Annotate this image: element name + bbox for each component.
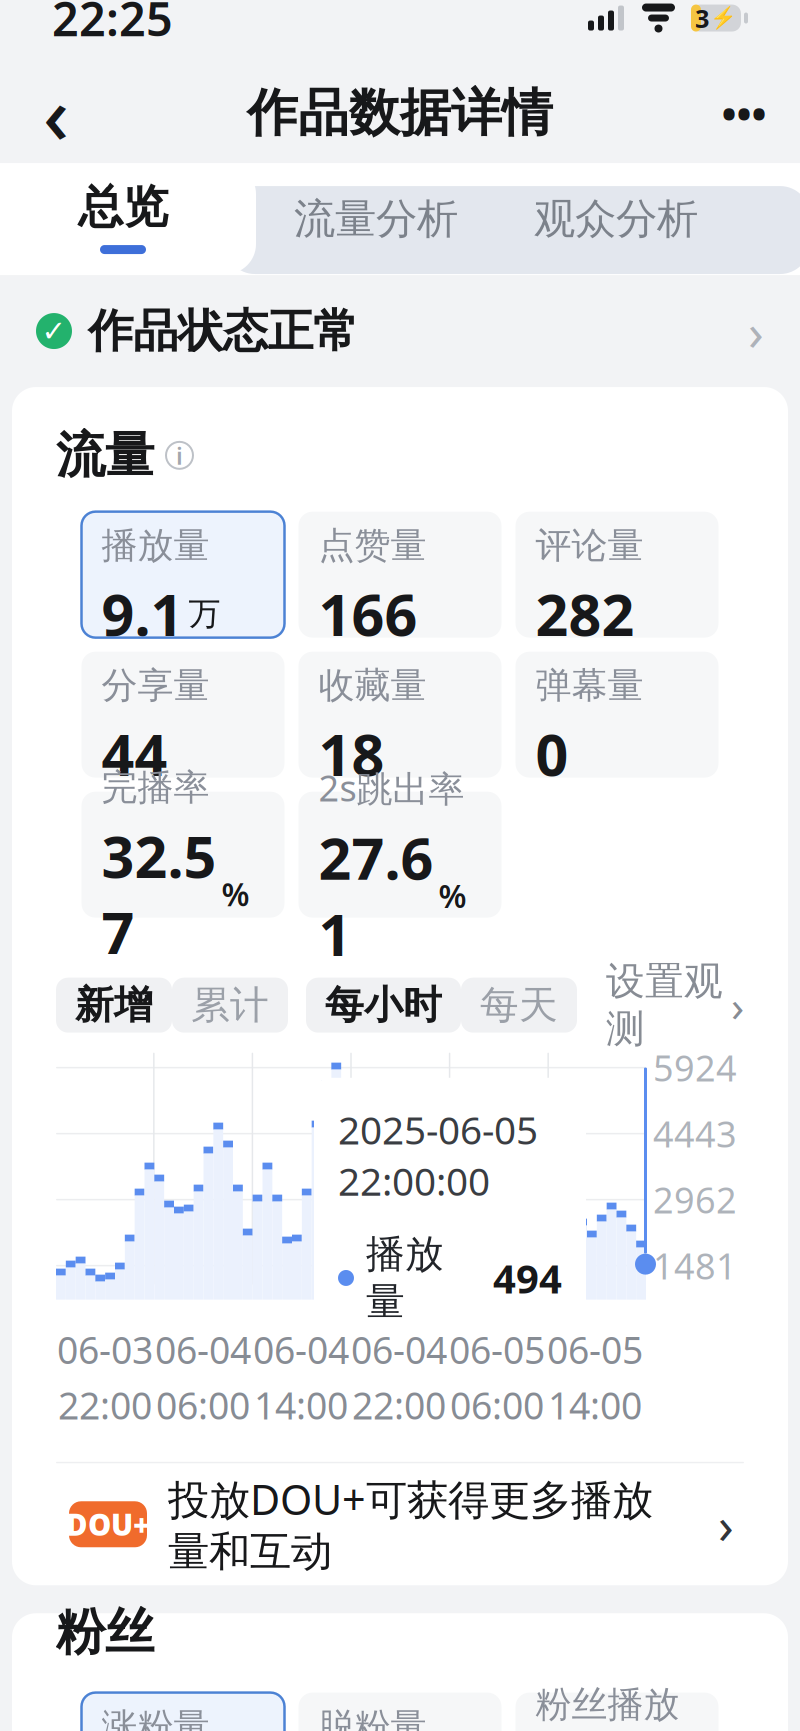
button[interactable]: 新增 xyxy=(56,978,172,1033)
button[interactable]: 弹幕量 xyxy=(515,652,718,778)
button[interactable]: 流量说明 xyxy=(166,439,193,471)
staticText: 流量 xyxy=(56,425,154,486)
button[interactable]: 脱粉量 xyxy=(298,1693,501,1731)
staticText: › xyxy=(718,1491,734,1558)
staticText: 22:25 xyxy=(52,0,173,49)
staticText: › xyxy=(731,977,744,1033)
button[interactable]: ✓ xyxy=(0,275,800,387)
staticText: 每天 xyxy=(480,981,558,1029)
staticText: 播放量 xyxy=(101,523,209,568)
staticText: 播放量 xyxy=(366,1230,444,1325)
staticText: 06-05 xyxy=(547,1325,643,1374)
staticText: 新增 xyxy=(75,981,153,1029)
staticText: 06:00 xyxy=(156,1380,250,1430)
button[interactable]: 播放量 xyxy=(81,512,284,638)
staticText: 完播率 xyxy=(101,765,209,810)
button[interactable]: 评论量 xyxy=(515,512,718,638)
button[interactable]: 点赞量 xyxy=(298,512,501,638)
button[interactable]: 每小时 xyxy=(306,978,461,1033)
staticText: 2962 xyxy=(653,1176,737,1223)
staticText: 作品数据详情 xyxy=(247,82,553,144)
staticText: 06-04 xyxy=(351,1325,447,1374)
staticText: 涨粉量 xyxy=(101,1704,209,1731)
staticText: 设置观测 xyxy=(606,958,723,1053)
staticText: 4443 xyxy=(653,1110,737,1157)
staticText: 44 xyxy=(101,716,167,792)
button[interactable]: 观众分析 xyxy=(496,164,736,274)
staticText: DOU+ xyxy=(66,1505,150,1544)
staticText: 06:00 xyxy=(450,1380,544,1430)
staticText: 18 xyxy=(318,716,384,792)
button[interactable]: 粉丝播放占比 xyxy=(515,1693,718,1731)
staticText: i xyxy=(176,439,183,471)
button[interactable]: DOU+ xyxy=(12,1463,788,1585)
button[interactable]: 涨粉量 xyxy=(81,1693,284,1731)
staticText: 分享量 xyxy=(101,663,209,708)
staticText: 06-04 xyxy=(253,1325,349,1374)
staticText: 投放DOU+可获得更多播放量和互动 xyxy=(168,1471,653,1577)
staticText: ••• xyxy=(721,86,766,140)
staticText: 粉丝播放占比 xyxy=(535,1682,679,1731)
staticText: 流量分析 xyxy=(294,194,458,244)
staticText: 总览 xyxy=(78,179,168,235)
staticText: 作品状态正常 xyxy=(88,303,358,359)
button[interactable]: 返回 xyxy=(16,73,96,153)
staticText: 22:00 xyxy=(58,1380,152,1430)
staticText: 收藏量 xyxy=(318,663,426,708)
button[interactable]: 分享量 xyxy=(81,652,284,778)
button[interactable]: 完播率 xyxy=(81,792,284,918)
staticText: % xyxy=(438,874,466,917)
staticText: 06-03 xyxy=(57,1325,153,1374)
staticText: 粉丝 xyxy=(56,1602,154,1663)
staticText: % xyxy=(221,872,249,915)
staticText: 494 xyxy=(493,1251,562,1304)
staticText: 评论量 xyxy=(535,523,643,568)
button[interactable]: 2s跳出率 xyxy=(298,792,501,918)
staticText: 06-04 xyxy=(155,1325,251,1374)
button[interactable]: 流量分析 xyxy=(256,164,496,274)
staticText: 弹幕量 xyxy=(535,663,643,708)
staticText: 5924 xyxy=(653,1044,737,1091)
staticText: 14:00 xyxy=(548,1380,642,1430)
staticText: 2025-06-05 22:00:00 xyxy=(338,1104,538,1206)
staticText: 32.57 xyxy=(101,818,216,970)
staticText: ⚡ xyxy=(710,6,737,30)
button[interactable]: 更多 xyxy=(704,73,784,153)
button[interactable]: 累计 xyxy=(172,978,288,1033)
staticText: 万 xyxy=(188,594,220,633)
staticText: ✓ xyxy=(41,314,66,348)
button[interactable]: 设置观测 xyxy=(606,958,744,1053)
staticText: 27.61 xyxy=(318,819,433,972)
staticText: 观众分析 xyxy=(534,194,698,244)
staticText: 282 xyxy=(535,576,634,652)
staticText: 3 xyxy=(695,1,709,35)
staticText: 2s跳出率 xyxy=(318,763,464,811)
staticText: 22:00 xyxy=(352,1380,446,1430)
staticText: 0 xyxy=(535,716,568,792)
staticText: 脱粉量 xyxy=(318,1704,426,1731)
staticText: 1481 xyxy=(653,1242,737,1289)
button[interactable]: 总览 xyxy=(0,164,256,274)
staticText: 累计 xyxy=(191,981,269,1029)
staticText: 每小时 xyxy=(325,981,442,1029)
staticText: 9.1 xyxy=(101,576,183,652)
staticText: ‹ xyxy=(43,60,69,166)
button[interactable]: 收藏量 xyxy=(298,652,501,778)
staticText: 14:00 xyxy=(254,1380,348,1430)
button[interactable]: 每天 xyxy=(461,978,577,1033)
staticText: › xyxy=(748,297,764,365)
staticText: 点赞量 xyxy=(318,523,426,568)
staticText: 06-05 xyxy=(449,1325,545,1374)
staticText: 166 xyxy=(318,576,417,652)
